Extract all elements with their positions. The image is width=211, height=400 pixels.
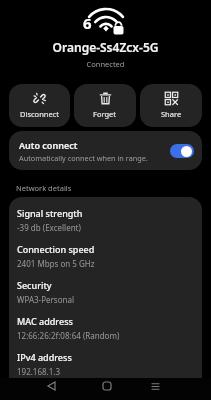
button[interactable]: Auto connect — [9, 131, 202, 170]
staticText: -39 db (Excellent) — [17, 222, 81, 233]
staticText: 2401 Mbps on 5 GHz — [17, 258, 95, 269]
staticText: Auto connect — [19, 139, 78, 151]
button[interactable]: Forget — [74, 84, 136, 127]
staticText: Forget — [93, 109, 117, 119]
staticText: MAC address — [17, 315, 73, 327]
staticText: Network details — [16, 183, 72, 193]
button[interactable]: Disconnect — [9, 84, 70, 127]
staticText: Automatically connect when in range. — [19, 153, 148, 163]
button[interactable]: Share — [140, 84, 202, 127]
staticText: 192.168.1.3 — [17, 366, 61, 377]
staticText: Orange-Ss4Zcx-5G — [0, 39, 211, 55]
staticText: IPv4 address — [17, 351, 72, 363]
staticText: WPA3-Personal — [17, 294, 74, 305]
button[interactable]: IPv4 address — [9, 346, 202, 382]
staticText: Connected — [0, 59, 211, 69]
staticText: 12:66:26:2f:08:64 (Random) — [17, 330, 120, 341]
button[interactable]: MAC address — [9, 310, 202, 346]
button[interactable]: Connection speed — [9, 238, 202, 274]
staticText: Security — [17, 279, 52, 291]
button[interactable] — [97, 376, 117, 396]
staticText: 6 — [83, 13, 92, 33]
staticText: Connection speed — [17, 243, 95, 255]
button[interactable] — [145, 376, 165, 396]
button[interactable] — [41, 376, 61, 396]
button[interactable]: Security — [9, 274, 202, 310]
button[interactable]: Signal strength — [9, 202, 202, 238]
button[interactable] — [170, 144, 194, 158]
staticText: Share — [161, 109, 182, 119]
staticText: Disconnect — [20, 109, 59, 119]
staticText: Signal strength — [17, 207, 83, 219]
